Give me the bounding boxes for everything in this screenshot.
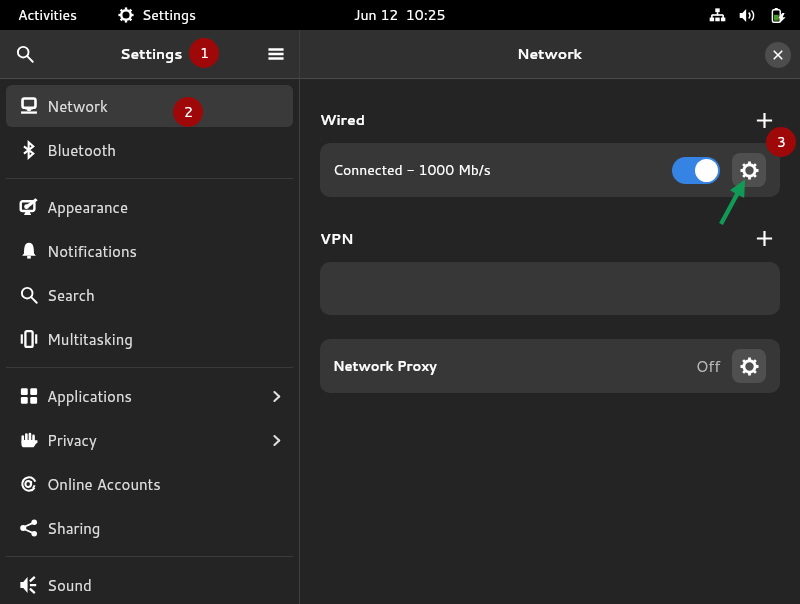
button[interactable]: Notifications: [6, 230, 293, 272]
staticText: Notifications: [47, 241, 137, 262]
staticText: Sharing: [47, 518, 101, 539]
staticText: Network: [47, 96, 108, 117]
staticText: Sound: [47, 575, 92, 596]
staticText: Connected - 1000 Mb/s: [333, 160, 491, 180]
staticText: Multitasking: [47, 329, 133, 350]
button[interactable]: Activities: [10, 0, 85, 30]
button[interactable]: Wired connection settings: [732, 153, 766, 187]
button[interactable]: Add wired connection: [750, 106, 778, 134]
button[interactable]: Privacy: [6, 419, 293, 461]
button[interactable]: Applications: [6, 375, 293, 417]
button[interactable]: Network proxy settings: [732, 349, 766, 383]
staticText: Appearance: [47, 197, 128, 218]
staticText: 2: [184, 102, 193, 122]
button[interactable]: Close: [765, 42, 791, 68]
button[interactable]: Search settings: [8, 37, 42, 71]
button[interactable]: Settings: [110, 0, 205, 30]
button[interactable]: Appearance: [6, 186, 293, 228]
staticText: Activities: [18, 5, 77, 25]
button[interactable]: Network: [6, 85, 293, 127]
button[interactable]: Add VPN: [750, 224, 778, 252]
staticText: Off: [696, 356, 721, 377]
staticText: 1: [200, 43, 209, 63]
staticText: Search: [47, 285, 95, 306]
staticText: Jun 12 10:25: [354, 5, 446, 25]
staticText: Online Accounts: [47, 474, 161, 495]
staticText: Network: [517, 44, 583, 64]
button[interactable]: Bluetooth: [6, 129, 293, 171]
staticText: Wired: [320, 110, 365, 130]
button[interactable]: System status menu: [701, 0, 800, 30]
button[interactable]: Multitasking: [6, 318, 293, 360]
staticText: Applications: [47, 386, 132, 407]
button[interactable]: Sharing: [6, 507, 293, 549]
staticText: Bluetooth: [47, 140, 117, 161]
button[interactable]: Sound: [6, 564, 293, 604]
button[interactable]: Connected - 1000 Mb/s: [320, 143, 780, 197]
button[interactable]: Toggle wired connection: [672, 157, 720, 184]
staticText: Settings: [142, 5, 197, 25]
staticText: VPN: [320, 229, 354, 249]
staticText: Privacy: [47, 430, 97, 451]
staticText: Network Proxy: [333, 357, 437, 375]
button[interactable]: Jun 12 10:25: [346, 0, 454, 30]
button[interactable]: Online Accounts: [6, 463, 293, 505]
button[interactable]: Network Proxy: [320, 339, 780, 393]
staticText: 3: [777, 132, 786, 152]
button[interactable]: Main menu: [259, 37, 293, 71]
staticText: Settings: [120, 44, 183, 64]
button[interactable]: Search: [6, 274, 293, 316]
